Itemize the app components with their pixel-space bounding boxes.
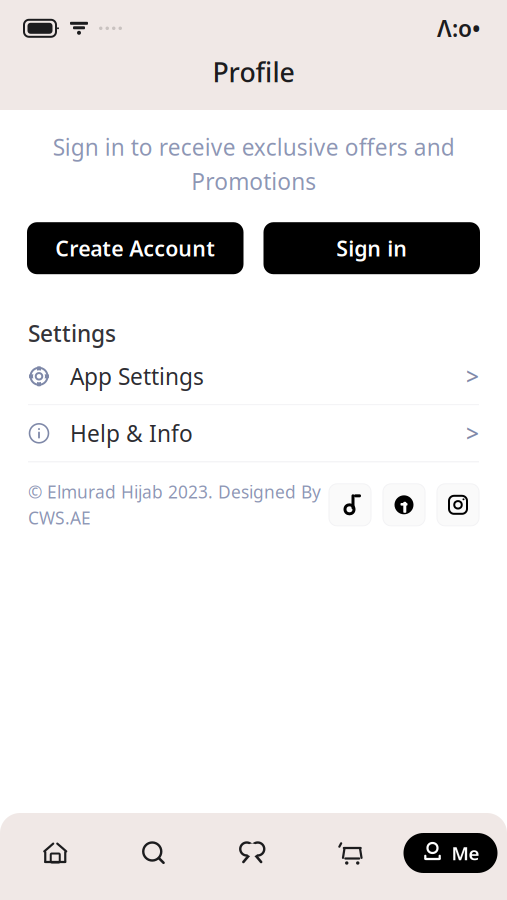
button[interactable]: Social link [329,484,371,526]
staticText: Help & Info [70,418,193,448]
staticText: Settings [28,318,116,348]
staticText: Λ:o• [437,13,481,43]
staticText: App Settings [70,361,204,391]
button[interactable]: Social link [437,484,479,526]
button[interactable]: Create Account [27,222,243,274]
button[interactable]: Cart [301,833,400,873]
staticText: Sign in [336,234,407,262]
staticText: > [466,361,479,391]
button[interactable]: Favourites [203,833,301,873]
button[interactable]: Help & Info [0,405,507,461]
button[interactable]: Social link [383,484,425,526]
button[interactable]: Home [6,833,104,873]
staticText: > [466,418,479,448]
button[interactable]: App Settings [0,348,507,404]
staticText: Sign in to receive exclusive offers and … [52,132,454,196]
staticText: Create Account [55,234,215,262]
staticText: Me [451,841,479,865]
staticText: © Elmurad Hijab 2023. Designed By CWS.AE [28,480,321,529]
button[interactable]: Me [403,833,497,873]
button[interactable]: Sign in [263,222,480,274]
staticText: Profile [212,54,294,90]
button[interactable]: Search [104,833,203,873]
